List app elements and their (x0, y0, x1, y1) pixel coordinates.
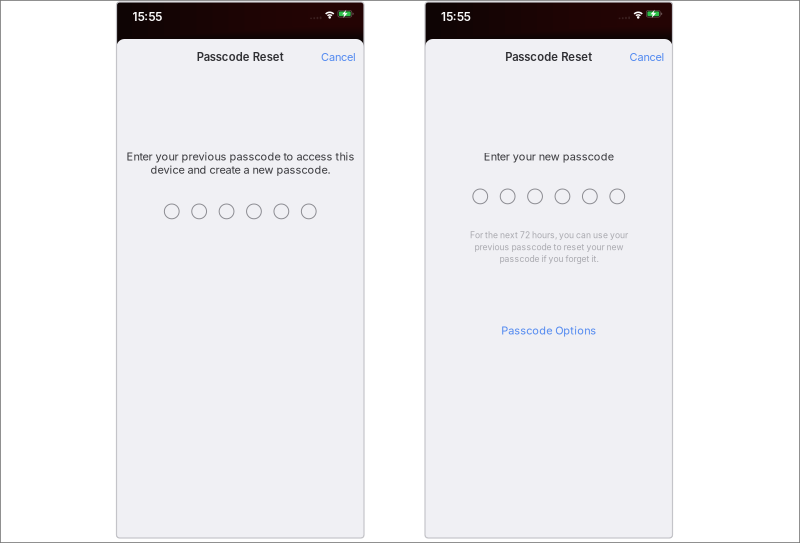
button[interactable]: Cancel (624, 45, 669, 69)
staticText: For the next 72 hours, you can use your … (470, 230, 628, 264)
staticText: Passcode Reset (505, 50, 592, 64)
button[interactable]: Cancel (316, 45, 361, 69)
staticText: 15:55 (132, 10, 162, 24)
staticText: Enter your previous passcode to access t… (126, 150, 354, 176)
staticText: Passcode Reset (197, 50, 284, 64)
staticText: Cancel (629, 50, 664, 64)
staticText: Enter your new passcode (484, 150, 614, 163)
staticText: 15:55 (441, 10, 471, 24)
staticText: Passcode Options (501, 324, 596, 337)
staticText: Cancel (321, 50, 356, 64)
button[interactable]: Passcode Options (495, 320, 602, 341)
